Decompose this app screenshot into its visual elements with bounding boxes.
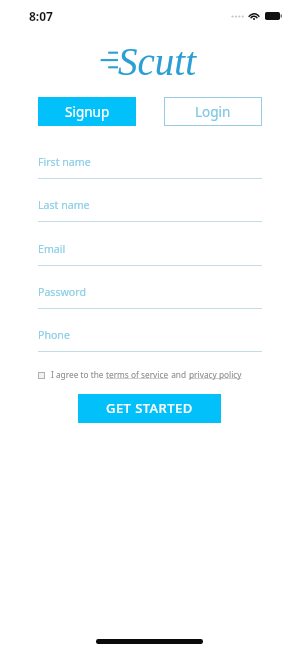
button[interactable]: terms of service [106,369,169,380]
staticText: Password [38,285,86,299]
button[interactable]: Phone [38,328,70,342]
button[interactable]: Agree to terms checkbox [38,372,45,379]
staticText: Scutt [118,40,196,83]
staticText: Email [38,242,66,256]
button[interactable]: Password [38,285,86,299]
button[interactable]: privacy policy [189,369,242,380]
button[interactable]: Email [38,242,66,256]
staticText: GET STARTED [106,399,193,417]
button[interactable]: GET STARTED [78,394,221,423]
button[interactable]: Signup [38,97,136,126]
staticText: and [169,369,189,380]
staticText: First name [38,155,91,169]
staticText: Signup [65,103,110,121]
staticText: 8:07 [29,8,53,24]
staticText: Phone [38,328,70,342]
button[interactable]: Last name [38,198,90,212]
staticText: Login [195,103,231,121]
button[interactable]: First name [38,155,91,169]
button[interactable]: Login [164,97,262,126]
staticText: I agree to the [51,369,106,380]
staticText: Last name [38,198,90,212]
